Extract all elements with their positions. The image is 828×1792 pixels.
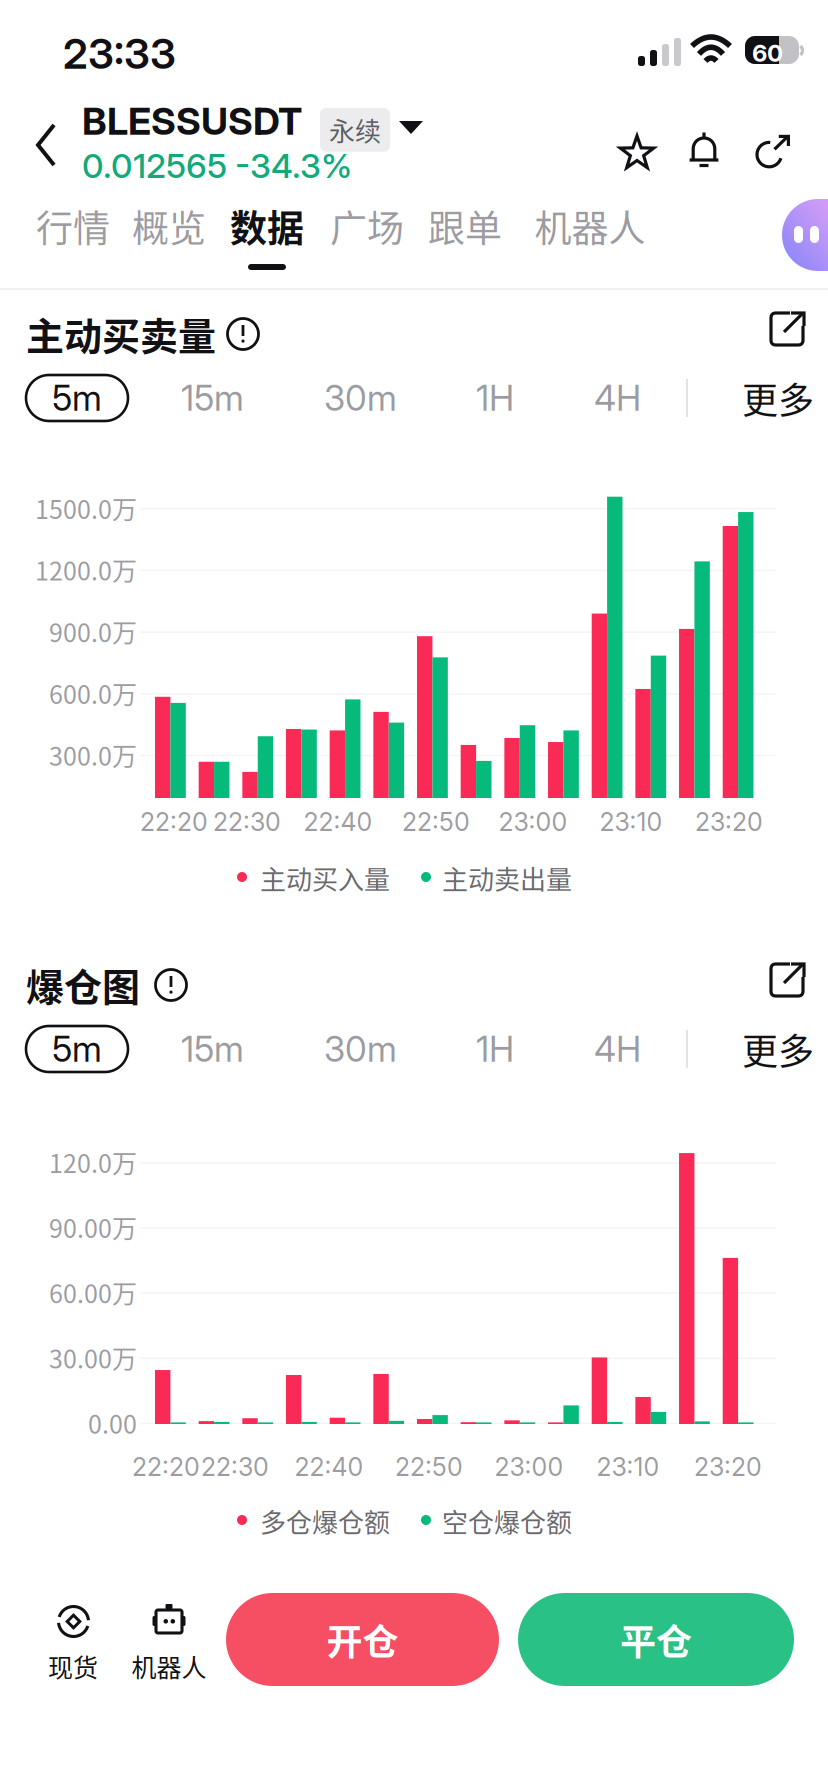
staticText: 30m [324,1028,397,1070]
staticText: 更多 [742,372,814,424]
button[interactable]: 机器人 [122,1604,216,1708]
staticText: 主动卖出量 [442,859,572,897]
staticText: 60.00万 [49,1274,137,1310]
button[interactable]: 5m [26,375,128,421]
staticText: 23:00 [498,807,567,837]
staticText: 概览 [132,199,206,253]
staticText: 4H [594,1028,641,1070]
staticText: 5m [52,377,102,419]
button[interactable]: 15m [181,1026,261,1072]
staticText: 爆仓图 [26,957,140,1012]
button[interactable]: 开仓 [226,1593,499,1686]
staticText: 22:20 [140,807,208,837]
button[interactable]: 跟单 [395,196,535,288]
staticText: 300.0万 [49,737,137,773]
staticText: 1500.0万 [35,490,137,526]
button[interactable]: 4H [594,1026,654,1072]
button[interactable]: 4H [594,375,654,421]
staticText: 22:50 [402,807,470,837]
staticText: 22:20 [132,1452,200,1482]
staticText: 跟单 [428,199,502,253]
staticText: 23:10 [599,807,662,837]
button[interactable]: Expand chart [754,949,820,1015]
staticText: 22:30 [213,807,281,837]
staticText: 4H [594,377,641,419]
button[interactable]: Expand chart [754,298,820,364]
staticText: 900.0万 [49,613,137,649]
staticText: 23:33 [63,28,176,79]
staticText: 机器人 [131,1648,206,1684]
button[interactable]: 15m [181,375,261,421]
staticText: 30.00万 [49,1339,137,1376]
staticText: 15m [181,377,244,419]
staticText: 1200.0万 [35,552,137,588]
staticText: 22:40 [294,1452,363,1482]
button[interactable]: Alerts [670,117,738,189]
button[interactable]: 广场 [297,196,437,288]
staticText: 广场 [330,199,404,253]
button[interactable]: Favorite [603,117,671,189]
staticText: 0.012565 -34.3% [82,145,352,186]
staticText: 现货 [48,1648,98,1684]
staticText: 永续 [329,111,381,149]
staticText: 5m [52,1028,102,1070]
button[interactable]: 1H [476,1026,536,1072]
staticText: 23:10 [596,1452,659,1482]
staticText: 90.00万 [49,1209,137,1245]
button[interactable]: 更多 [742,1026,822,1072]
staticText: 主动买卖量 [26,306,216,361]
staticText: 行情 [36,199,110,253]
staticText: 主动买入量 [260,859,390,897]
button[interactable]: 30m [324,1026,404,1072]
staticText: 30m [324,377,397,419]
button[interactable]: 现货 [30,1604,116,1708]
button[interactable]: Back [18,102,84,188]
staticText: 机器人 [534,199,645,253]
button[interactable]: 机器人 [520,196,660,288]
staticText: 数据 [230,199,304,253]
button[interactable]: 概览 [99,196,239,288]
staticText: 1H [476,1028,514,1070]
staticText: 15m [181,1028,244,1070]
staticText: 60 [752,38,783,67]
button[interactable]: Share [739,117,807,189]
button[interactable]: 行情 [3,196,143,288]
staticText: 空仓爆仓额 [442,1502,572,1540]
staticText: BLESSUSDT [82,98,302,144]
button[interactable]: 更多 [742,375,822,421]
staticText: 更多 [742,1023,814,1075]
staticText: 多仓爆仓额 [260,1502,390,1540]
staticText: 0.00 [88,1405,137,1441]
staticText: 23:00 [494,1452,563,1482]
staticText: 平仓 [620,1613,692,1665]
button[interactable]: 平仓 [518,1593,794,1686]
staticText: 开仓 [326,1613,398,1665]
staticText: 120.0万 [49,1144,137,1180]
staticText: 600.0万 [49,675,137,711]
button[interactable]: 5m [26,1026,128,1072]
staticText: 23:20 [695,807,763,837]
button[interactable]: 数据 [197,196,337,288]
staticText: 22:30 [201,1452,269,1482]
staticText: 23:20 [694,1452,762,1482]
staticText: 22:50 [395,1452,463,1482]
button[interactable]: 1H [476,375,536,421]
staticText: 1H [476,377,514,419]
staticText: 22:40 [303,807,372,837]
button[interactable]: 30m [324,375,404,421]
